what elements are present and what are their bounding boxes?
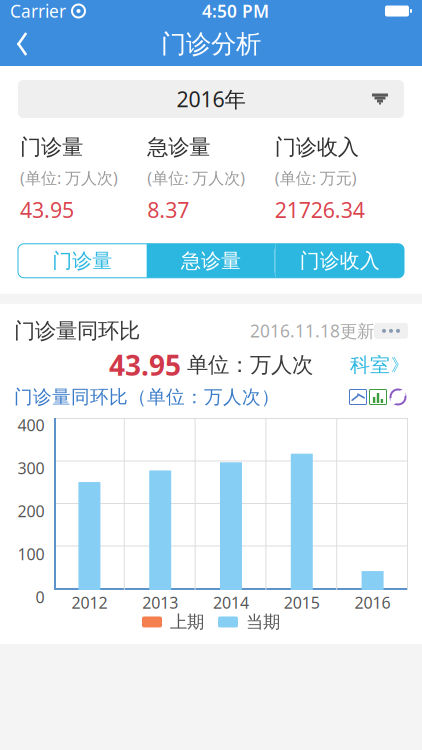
staticText: 2013: [142, 592, 178, 613]
staticText: 上期: [170, 611, 204, 633]
staticText: 300: [17, 457, 44, 479]
staticText: 2016.11.18更新: [250, 319, 374, 342]
staticText: 0: [35, 586, 44, 608]
staticText: 门诊量同环比（单位：万人次）: [14, 385, 280, 408]
button[interactable]: 刷新: [388, 388, 408, 406]
staticText: 100: [17, 543, 44, 565]
staticText: 200: [17, 500, 44, 522]
staticText: 急诊量: [181, 248, 241, 273]
staticText: 门诊分析: [161, 28, 261, 59]
staticText: 4:50 PM: [202, 0, 269, 22]
button[interactable]: 更多选项: [374, 323, 408, 339]
button[interactable]: 柱状图: [368, 388, 388, 406]
staticText: [66, 0, 71, 22]
staticText: 43.95: [20, 195, 74, 224]
staticText: 单位：万人次: [187, 352, 313, 378]
staticText: (单位: 万元): [275, 167, 357, 188]
staticText: 43.95: [109, 346, 181, 384]
staticText: 急诊量: [147, 134, 210, 160]
button[interactable]: 折线图: [348, 388, 368, 406]
button[interactable]: 科室: [350, 353, 408, 377]
staticText: 2014: [213, 592, 249, 613]
staticText: 21726.34: [275, 195, 365, 224]
staticText: 门诊量: [52, 248, 112, 273]
staticText: 2015: [284, 592, 320, 613]
button[interactable]: 急诊量: [147, 244, 275, 278]
staticText: Carrier: [10, 0, 66, 22]
button[interactable]: 2016年: [18, 80, 404, 118]
staticText: 门诊收入: [300, 248, 380, 273]
button[interactable]: 门诊收入: [275, 244, 404, 278]
staticText: 门诊收入: [275, 134, 359, 160]
staticText: 》: [391, 354, 408, 376]
staticText: 400: [17, 414, 44, 436]
staticText: (单位: 万人次): [20, 167, 118, 188]
staticText: 2012: [71, 592, 107, 613]
staticText: 8.37: [147, 195, 189, 224]
staticText: 门诊量: [20, 134, 83, 160]
staticText: (单位: 万人次): [147, 167, 245, 188]
staticText: 门诊量同环比: [14, 318, 140, 344]
staticText: 当期: [246, 611, 280, 633]
staticText: 2016: [355, 592, 391, 613]
button[interactable]: 门诊量: [18, 244, 147, 278]
staticText: 2016年: [176, 85, 245, 113]
staticText: 科室: [350, 353, 390, 377]
button[interactable]: 返回: [0, 22, 44, 66]
